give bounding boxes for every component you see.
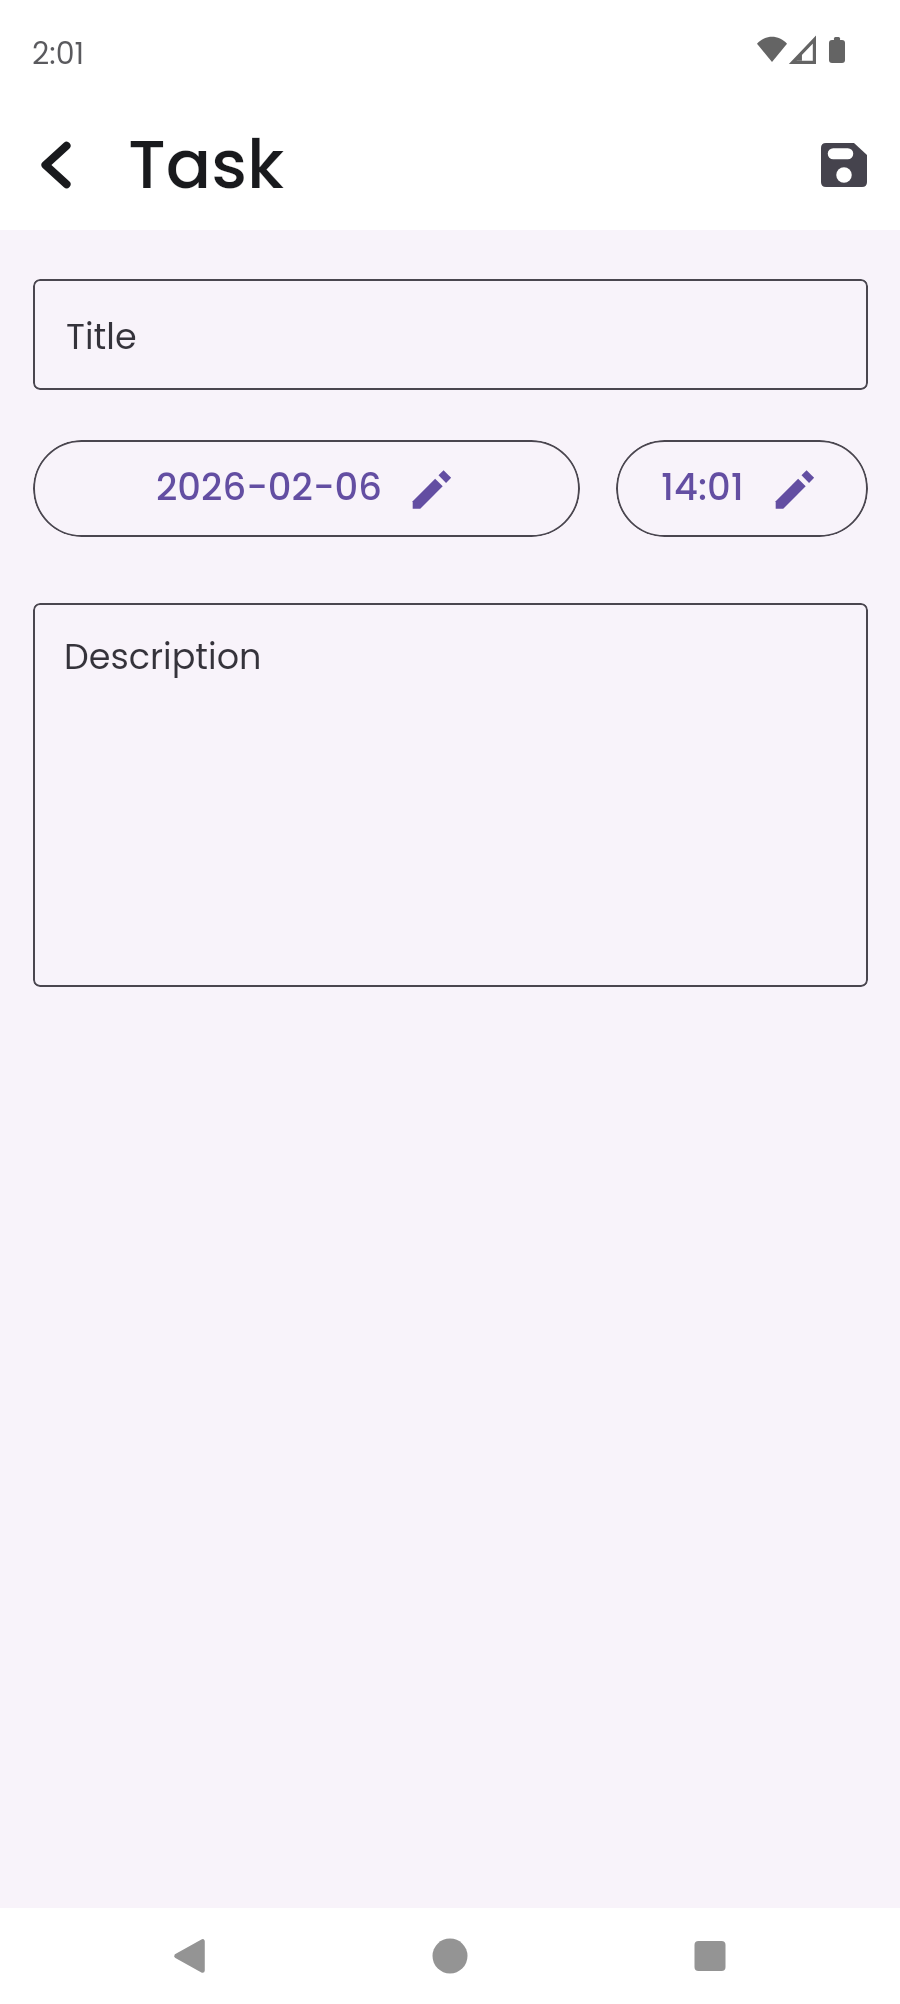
button[interactable]: Save: [802, 123, 886, 207]
button[interactable]: Recents: [668, 1908, 752, 2004]
button[interactable]: Home: [408, 1908, 492, 2004]
button[interactable]: Title: [33, 279, 868, 390]
button[interactable]: Description: [33, 603, 868, 987]
button[interactable]: Back: [14, 123, 98, 207]
staticText: 2026-02-06: [156, 461, 382, 513]
button[interactable]: 2026-02-06: [33, 440, 580, 537]
staticText: Title: [66, 312, 137, 361]
staticText: Description: [64, 632, 262, 681]
staticText: Task: [128, 118, 285, 212]
staticText: 2:01: [32, 33, 85, 75]
staticText: 14:01: [661, 461, 744, 513]
button[interactable]: 14:01: [616, 440, 868, 537]
button[interactable]: Back: [147, 1908, 231, 2004]
